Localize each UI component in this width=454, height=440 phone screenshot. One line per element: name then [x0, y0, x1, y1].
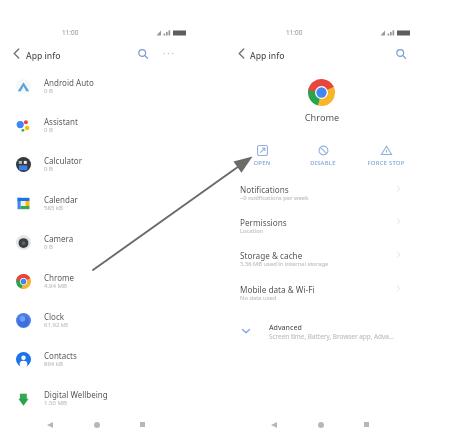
staticText: No data used — [240, 294, 277, 302]
button[interactable]: Calendar — [0, 184, 220, 222]
staticText: Camera — [44, 233, 74, 244]
button[interactable]: Contacts — [0, 340, 220, 378]
staticText: 0 B — [44, 126, 53, 134]
staticText: 61.92 kB — [44, 321, 69, 329]
staticText: Chrome — [44, 272, 74, 283]
button[interactable]: Mobile data & Wi-Fi — [224, 282, 444, 314]
button[interactable]: Recents — [360, 418, 373, 431]
staticText: ~0 notifications per week — [240, 194, 309, 202]
staticText: OPEN — [232, 159, 292, 167]
staticText: Chrome — [272, 111, 372, 124]
staticText: 0 B — [44, 165, 53, 173]
button[interactable]: Calculator — [0, 145, 220, 183]
button[interactable]: FORCE STOP — [356, 142, 416, 168]
button[interactable]: Android Auto — [0, 67, 220, 105]
button[interactable]: Home — [314, 418, 327, 431]
staticText: Digital Wellbeing — [44, 389, 108, 400]
staticText: Permissions — [240, 217, 287, 228]
staticText: 0 B — [44, 87, 53, 95]
button[interactable]: OPEN — [232, 142, 292, 168]
staticText: 4.94 MB — [44, 282, 67, 290]
button[interactable]: DISABLE — [293, 142, 353, 168]
button[interactable]: Camera — [0, 223, 220, 261]
staticText: Calculator — [44, 155, 82, 166]
staticText: Clock — [44, 311, 65, 322]
button[interactable]: Back — [267, 418, 280, 431]
staticText: Notifications — [240, 184, 289, 195]
button[interactable]: Notifications — [224, 182, 444, 214]
staticText: 11:00 — [286, 28, 303, 37]
button[interactable]: Search — [135, 46, 150, 61]
staticText: 11:00 — [62, 28, 79, 37]
button[interactable]: Recents — [136, 418, 149, 431]
staticText: Advanced — [269, 323, 302, 333]
staticText: Assistant — [44, 116, 78, 127]
staticText: FORCE STOP — [356, 159, 416, 167]
staticText: 864 kB — [44, 360, 63, 368]
staticText: Location — [240, 227, 264, 235]
staticText: App info — [26, 50, 61, 62]
button[interactable]: Storage & cache — [224, 248, 444, 280]
staticText: 583 kB — [44, 204, 63, 212]
button[interactable]: Back — [43, 418, 56, 431]
button[interactable]: Back — [9, 46, 24, 61]
staticText: DISABLE — [293, 159, 353, 167]
button[interactable]: Assistant — [0, 106, 220, 144]
staticText: 1.50 MB — [44, 399, 67, 407]
button[interactable]: More options — [161, 46, 176, 61]
button[interactable]: Permissions — [224, 215, 444, 247]
staticText: Mobile data & Wi-Fi — [240, 284, 315, 295]
staticText: Contacts — [44, 350, 77, 361]
button[interactable]: Chrome — [0, 262, 220, 300]
button[interactable]: Clock — [0, 301, 220, 339]
button[interactable]: Digital Wellbeing — [0, 379, 220, 417]
button[interactable]: Search — [393, 46, 408, 61]
staticText: 0 B — [44, 243, 53, 251]
staticText: Android Auto — [44, 77, 94, 88]
staticText: 3.36 MB used in internal storage — [240, 260, 329, 268]
staticText: Storage & cache — [240, 250, 303, 261]
button[interactable]: Advanced — [224, 320, 444, 344]
staticText: App info — [250, 50, 285, 62]
button[interactable]: Home — [90, 418, 103, 431]
button[interactable]: Back — [234, 46, 249, 61]
staticText: Screen time, Battery, Browser app, Adva… — [269, 332, 394, 341]
staticText: Calendar — [44, 194, 78, 205]
